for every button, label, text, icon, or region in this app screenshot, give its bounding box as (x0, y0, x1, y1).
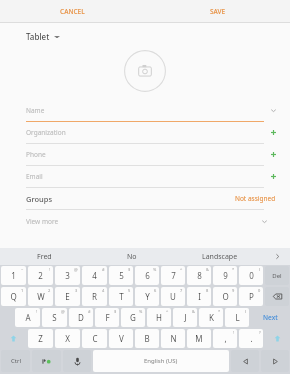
button[interactable]: No (88, 248, 176, 265)
button[interactable]: M (187, 329, 211, 348)
button[interactable]: Shift (1, 329, 26, 348)
button[interactable]: Phone (0, 144, 290, 165)
staticText: Y (145, 291, 150, 302)
button[interactable]: Tablet (26, 31, 60, 42)
staticText: V (119, 333, 124, 344)
button[interactable]: 6 (135, 266, 159, 285)
button[interactable]: Ctrl (1, 350, 30, 372)
staticText: M (195, 333, 203, 344)
button[interactable]: 5 (109, 266, 133, 285)
staticText: W (37, 291, 45, 302)
button[interactable]: L (225, 308, 249, 327)
button[interactable]: SAVE (145, 0, 290, 22)
staticText: ^ (180, 267, 183, 272)
button[interactable]: Expand Name (256, 100, 290, 121)
staticText: U (170, 291, 176, 302)
button[interactable]: S (42, 308, 67, 327)
button[interactable]: Z (28, 329, 53, 348)
staticText: Email (26, 172, 43, 181)
staticText: % (153, 267, 157, 272)
button[interactable]: 8 (187, 266, 211, 285)
staticText: S (52, 312, 57, 323)
button[interactable]: Groups (0, 188, 290, 209)
button[interactable]: 3 (55, 266, 80, 285)
button[interactable]: Q (1, 287, 26, 306)
staticText: SAVE (210, 7, 226, 16)
button[interactable]: U (161, 287, 185, 306)
staticText: ! (36, 309, 38, 314)
staticText: L (235, 312, 240, 323)
button[interactable]: Shift (265, 329, 289, 348)
button[interactable]: X (55, 329, 80, 348)
button[interactable]: CANCEL (0, 0, 145, 22)
staticText: I (198, 291, 201, 302)
button[interactable]: Add Organization (256, 122, 290, 143)
staticText: ( (245, 309, 247, 314)
staticText: Next (263, 313, 278, 322)
staticText: ~ (21, 267, 24, 272)
button[interactable]: English (US) (93, 350, 229, 372)
button[interactable]: 7 (161, 266, 185, 285)
button[interactable]: W (28, 287, 53, 306)
button[interactable]: A (15, 308, 40, 327)
button[interactable]: More suggestions (264, 248, 290, 265)
button[interactable]: 0 (239, 266, 263, 285)
button[interactable]: D (69, 308, 93, 327)
staticText: 0 (258, 288, 261, 293)
staticText: No (127, 252, 137, 262)
button[interactable]: Cursor right (261, 350, 289, 372)
staticText: T (119, 291, 124, 302)
button[interactable]: 4 (82, 266, 107, 285)
button[interactable]: Add photo (124, 50, 166, 92)
button[interactable]: 2 (28, 266, 53, 285)
button[interactable]: K (199, 308, 223, 327)
button[interactable]: Symbols (32, 350, 61, 372)
button[interactable]: Y (135, 287, 159, 306)
button[interactable]: G (121, 308, 145, 327)
staticText: # (102, 267, 105, 272)
button[interactable]: P (239, 287, 263, 306)
button[interactable]: Backspace (265, 287, 289, 306)
staticText: K (209, 312, 214, 323)
staticText: Tablet (26, 31, 50, 42)
staticText: O (222, 291, 229, 302)
button[interactable]: E (55, 287, 80, 306)
staticText: 6 (145, 270, 150, 281)
button[interactable]: Organization (0, 122, 290, 143)
button[interactable]: 1 (1, 266, 26, 285)
button[interactable]: Fred (0, 248, 88, 265)
staticText: 5 (119, 270, 124, 281)
button[interactable]: Cursor left (231, 350, 259, 372)
button[interactable]: B (135, 329, 159, 348)
button[interactable]: , (213, 329, 237, 348)
button[interactable]: C (82, 329, 107, 348)
button[interactable]: Del (265, 266, 289, 285)
button[interactable]: Add Phone (256, 144, 290, 165)
staticText: # (88, 309, 91, 314)
button[interactable]: . (239, 329, 263, 348)
button[interactable]: Next (251, 308, 289, 327)
button[interactable]: View more (0, 210, 290, 232)
button[interactable]: 9 (213, 266, 237, 285)
staticText: 5 (128, 288, 131, 293)
button[interactable]: R (82, 287, 107, 306)
staticText: J (184, 312, 187, 323)
button[interactable]: Add Email (256, 166, 290, 187)
button[interactable]: V (109, 329, 133, 348)
button[interactable]: N (161, 329, 185, 348)
staticText: B (144, 333, 150, 344)
button[interactable]: I (187, 287, 211, 306)
button[interactable]: Email (0, 166, 290, 187)
button[interactable]: Name (0, 100, 290, 121)
staticText: ? (259, 330, 261, 335)
button[interactable]: O (213, 287, 237, 306)
button[interactable]: F (95, 308, 119, 327)
button[interactable]: Landscape (176, 248, 264, 265)
staticText: English (US) (144, 357, 178, 365)
staticText: $ (128, 267, 131, 272)
button[interactable]: J (173, 308, 197, 327)
button[interactable]: H (147, 308, 171, 327)
staticText: 9 (223, 270, 228, 281)
button[interactable]: Voice input (63, 350, 91, 372)
button[interactable]: T (109, 287, 133, 306)
